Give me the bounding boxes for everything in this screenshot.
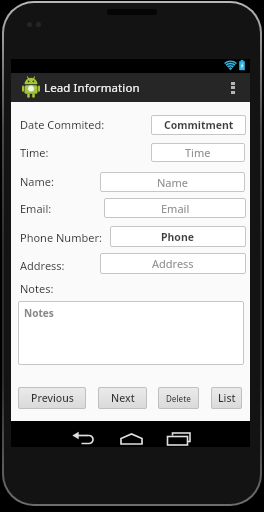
staticText: Phone Number: [20, 230, 102, 245]
button[interactable]: Address [100, 253, 246, 274]
staticText: Phone [161, 230, 195, 244]
button[interactable]: Name [100, 172, 245, 192]
button[interactable]: Email [104, 198, 246, 218]
button[interactable]: Commitment [151, 115, 246, 135]
staticText: Next [111, 391, 135, 405]
button[interactable] [227, 73, 239, 102]
button[interactable]: Time [151, 143, 245, 162]
button[interactable]: Next [98, 387, 147, 409]
staticText: Previous [31, 391, 74, 405]
button[interactable]: Phone [110, 226, 246, 247]
staticText: Commitment [164, 118, 234, 132]
staticText: Date Commited: [20, 117, 105, 132]
staticText: Time [185, 145, 211, 160]
staticText: Lead Information [44, 80, 140, 96]
button[interactable] [117, 421, 146, 447]
staticText: Delete [166, 393, 191, 404]
staticText: Address: [20, 258, 65, 273]
staticText: Notes [24, 306, 54, 320]
staticText: List [218, 391, 236, 405]
button[interactable]: Delete [158, 387, 199, 409]
button[interactable]: Notes [18, 301, 244, 365]
button[interactable] [163, 421, 193, 447]
staticText: Address [152, 256, 194, 271]
button[interactable]: Previous [18, 387, 86, 409]
staticText: Name [157, 175, 189, 190]
staticText: Email [161, 201, 190, 216]
staticText: Time: [20, 145, 49, 160]
staticText: Email: [20, 201, 52, 216]
staticText: Notes: [20, 281, 54, 296]
staticText: Name: [20, 174, 54, 189]
button[interactable] [69, 421, 97, 447]
button[interactable]: List [211, 387, 242, 409]
